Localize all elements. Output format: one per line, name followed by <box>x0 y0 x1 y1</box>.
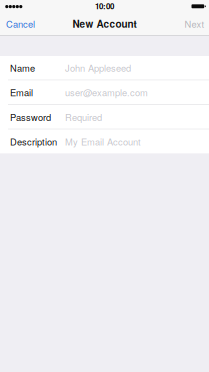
button[interactable]: Description <box>0 130 209 153</box>
staticText: Required <box>65 110 102 124</box>
button[interactable]: Name <box>0 56 209 80</box>
button[interactable]: Next <box>180 14 209 36</box>
staticText: John Appleseed <box>65 61 131 74</box>
staticText: Password <box>10 110 51 124</box>
staticText: user@example.com <box>65 86 148 99</box>
button[interactable]: Cancel <box>0 14 41 36</box>
staticText: Description <box>10 135 57 148</box>
staticText: New Account <box>72 16 136 31</box>
staticText: Next <box>184 17 204 30</box>
staticText: Name <box>10 61 35 74</box>
staticText: 10:00 <box>95 0 114 12</box>
button[interactable]: Password <box>0 105 209 129</box>
staticText: Email <box>10 86 33 99</box>
staticText: My Email Account <box>65 135 141 148</box>
staticText: Cancel <box>6 17 35 30</box>
button[interactable]: Email <box>0 80 209 104</box>
